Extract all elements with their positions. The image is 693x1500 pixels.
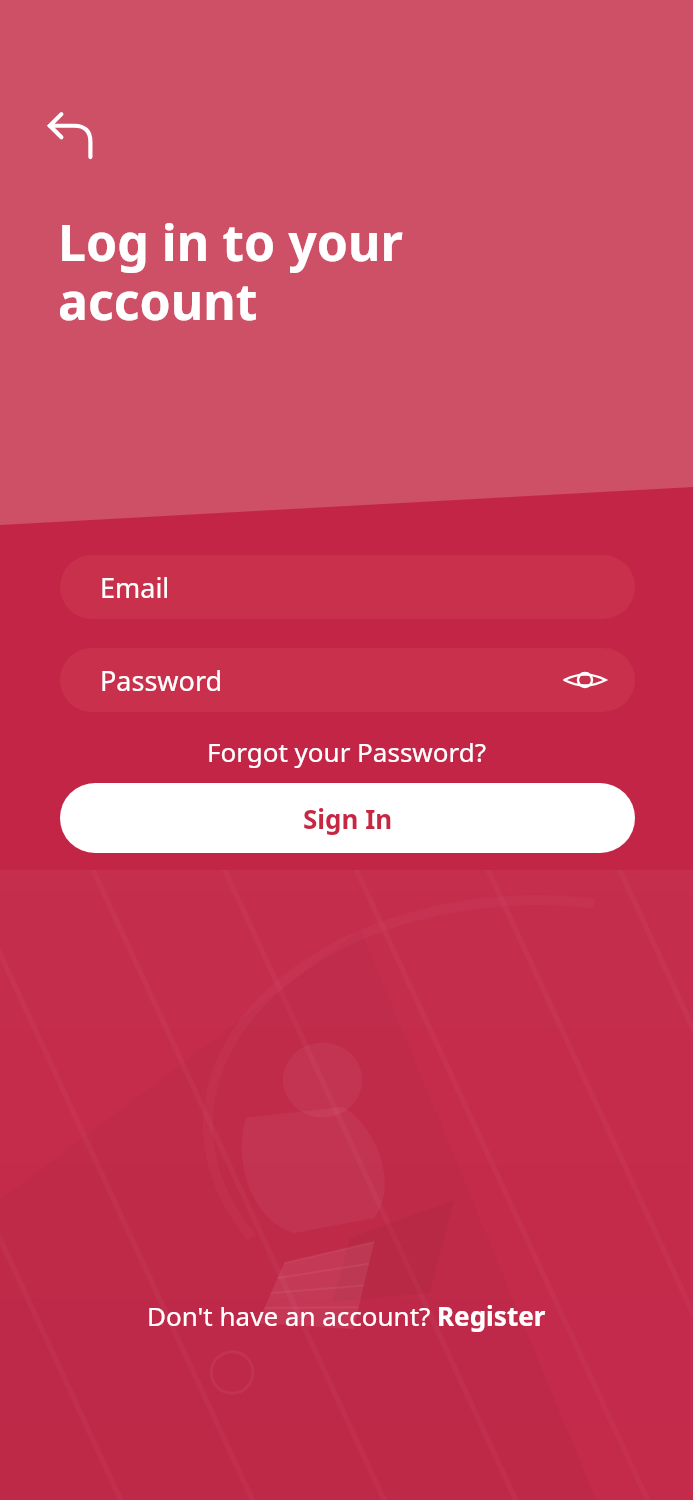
button[interactable]: Sign In bbox=[60, 783, 635, 853]
staticText: Forgot your Password? bbox=[207, 734, 487, 769]
button[interactable]: Back bbox=[44, 106, 102, 164]
button[interactable]: Forgot your Password? bbox=[197, 730, 497, 773]
staticText: Email bbox=[100, 569, 170, 606]
button[interactable]: Show password bbox=[563, 662, 607, 698]
staticText: Sign In bbox=[303, 801, 393, 836]
staticText: Log in to your account bbox=[58, 208, 403, 334]
button[interactable]: Email bbox=[60, 555, 635, 619]
button[interactable]: Password bbox=[60, 648, 635, 712]
button[interactable]: Don't have an account? Register bbox=[135, 1292, 558, 1339]
staticText: Don't have an account? Register bbox=[147, 1298, 546, 1333]
staticText: Password bbox=[100, 662, 563, 699]
